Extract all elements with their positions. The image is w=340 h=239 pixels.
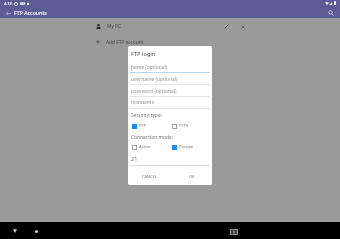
staticText: My PC [107,23,121,30]
button[interactable]: OK [188,172,196,181]
button[interactable]: Home [31,229,41,239]
staticText: FTP login [131,50,156,58]
staticText: FTP [139,123,146,129]
button[interactable]: FTPS [171,121,190,131]
button[interactable]: My PC [96,18,247,34]
staticText: OK [189,174,195,179]
staticText: password (optional) [131,88,177,95]
staticText: username (optional) [131,76,178,83]
button[interactable]: Active [131,142,152,152]
button[interactable]: Delete [238,22,247,31]
button[interactable]: Back [3,8,13,18]
staticText: FTPS [179,123,189,129]
staticText: 21 [131,155,138,163]
button[interactable]: Search [326,8,336,18]
staticText: Active [139,144,151,150]
staticText: name (optional) [131,64,168,71]
button[interactable]: Recents [226,227,237,238]
button[interactable]: Passive [171,142,195,152]
button[interactable]: CANCEL [141,172,158,181]
button[interactable]: FTP [131,121,147,131]
button[interactable]: Edit [222,22,231,31]
staticText: Connection mode: [131,134,174,141]
staticText: Security type: [131,112,162,119]
staticText: CANCEL [142,174,157,179]
button[interactable]: Back [10,229,20,239]
staticText: Passive [179,144,194,150]
button[interactable]: Add FTP account [96,34,247,50]
staticText: hostname [131,99,155,106]
staticText: FTP Accounts [14,9,47,16]
staticText: Add FTP account [106,39,144,46]
staticText: 4:13 [4,1,12,6]
